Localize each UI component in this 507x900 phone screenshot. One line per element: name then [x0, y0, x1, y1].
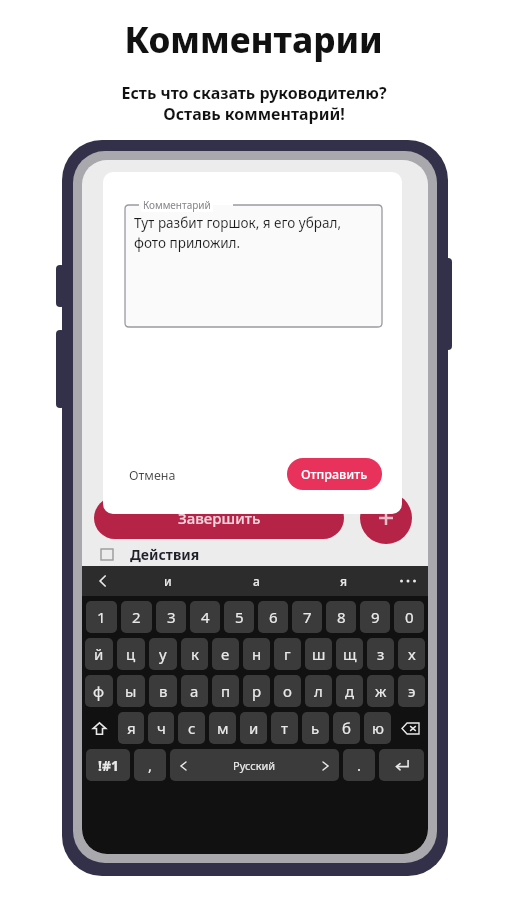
- staticText: к: [191, 644, 199, 664]
- button[interactable]: в: [149, 675, 177, 707]
- staticText: о: [283, 681, 292, 701]
- staticText: Есть что сказать руководителю? Оставь ко…: [121, 82, 387, 125]
- button[interactable]: 3: [156, 601, 186, 633]
- button[interactable]: а: [212, 566, 300, 596]
- button[interactable]: !#1: [86, 749, 130, 781]
- button[interactable]: я: [118, 712, 144, 744]
- button[interactable]: о: [274, 675, 301, 707]
- staticText: 4: [201, 607, 210, 627]
- button[interactable]: л: [305, 675, 332, 707]
- staticText: т: [281, 718, 288, 738]
- button[interactable]: Отправить: [287, 458, 382, 490]
- staticText: с: [188, 718, 196, 738]
- button[interactable]: н: [243, 638, 270, 670]
- button[interactable]: 9: [360, 601, 390, 633]
- button[interactable]: ч: [148, 712, 174, 744]
- button[interactable]: ы: [117, 675, 145, 707]
- button[interactable]: .: [343, 749, 375, 781]
- staticText: э: [408, 681, 416, 701]
- button[interactable]: ж: [367, 675, 394, 707]
- button[interactable]: ю: [364, 712, 391, 744]
- button[interactable]: у: [149, 638, 177, 670]
- button[interactable]: 8: [326, 601, 356, 633]
- button[interactable]: р: [243, 675, 270, 707]
- staticText: 1: [97, 607, 106, 627]
- button[interactable]: я: [300, 566, 388, 596]
- button[interactable]: 0: [394, 601, 424, 633]
- button[interactable]: х: [398, 638, 425, 670]
- button[interactable]: г: [274, 638, 301, 670]
- staticText: а: [190, 681, 199, 701]
- staticText: Отмена: [129, 467, 176, 484]
- button[interactable]: 1: [86, 601, 117, 633]
- staticText: Тут разбит горшок, я его убрал, фото при…: [134, 214, 374, 252]
- button[interactable]: Удалить: [395, 712, 425, 744]
- staticText: Действия: [130, 545, 200, 564]
- button[interactable]: ш: [305, 638, 332, 670]
- button[interactable]: ,: [134, 749, 166, 781]
- staticText: и: [164, 573, 172, 589]
- button[interactable]: и: [240, 712, 267, 744]
- button[interactable]: Русский: [170, 749, 339, 781]
- staticText: ,: [148, 755, 153, 775]
- staticText: н: [252, 644, 262, 664]
- staticText: Завершить: [178, 508, 261, 528]
- staticText: Отправить: [301, 466, 368, 483]
- button[interactable]: щ: [336, 638, 363, 670]
- staticText: 5: [235, 607, 244, 627]
- button[interactable]: б: [333, 712, 360, 744]
- staticText: ц: [126, 644, 136, 664]
- button[interactable]: д: [336, 675, 363, 707]
- staticText: п: [221, 681, 231, 701]
- staticText: 0: [405, 607, 414, 627]
- button[interactable]: 6: [258, 601, 288, 633]
- button[interactable]: 2: [121, 601, 152, 633]
- button[interactable]: Действия: [82, 542, 428, 566]
- staticText: е: [221, 644, 230, 664]
- staticText: 9: [371, 607, 380, 627]
- button[interactable]: с: [178, 712, 205, 744]
- button[interactable]: Ввод: [379, 749, 424, 781]
- button[interactable]: Ещё: [388, 566, 428, 596]
- button[interactable]: т: [271, 712, 298, 744]
- button[interactable]: Shift: [85, 712, 114, 744]
- staticText: ь: [311, 718, 320, 738]
- button[interactable]: 5: [224, 601, 254, 633]
- staticText: я: [127, 718, 136, 738]
- staticText: р: [252, 681, 262, 701]
- button[interactable]: и: [124, 566, 212, 596]
- button[interactable]: Назад: [82, 566, 124, 596]
- staticText: 6: [269, 607, 278, 627]
- staticText: ч: [157, 718, 166, 738]
- staticText: Комментарии: [124, 16, 383, 64]
- button[interactable]: 4: [190, 601, 220, 633]
- button[interactable]: й: [85, 638, 113, 670]
- staticText: 3: [167, 607, 176, 627]
- staticText: ф: [93, 681, 105, 701]
- staticText: ж: [375, 681, 387, 701]
- button[interactable]: Завершить: [94, 497, 344, 539]
- button[interactable]: ф: [85, 675, 113, 707]
- staticText: а: [253, 573, 260, 589]
- button[interactable]: Добавить: [360, 492, 412, 544]
- button[interactable]: з: [367, 638, 394, 670]
- button[interactable]: э: [398, 675, 425, 707]
- button[interactable]: Отмена: [129, 460, 176, 490]
- staticText: ы: [125, 681, 137, 701]
- staticText: г: [284, 644, 291, 664]
- button[interactable]: а: [181, 675, 208, 707]
- staticText: й: [94, 644, 104, 664]
- button[interactable]: 7: [292, 601, 322, 633]
- staticText: у: [159, 644, 167, 664]
- staticText: б: [342, 718, 351, 738]
- staticText: я: [340, 573, 348, 589]
- button[interactable]: ц: [117, 638, 145, 670]
- button[interactable]: е: [212, 638, 239, 670]
- button[interactable]: ь: [302, 712, 329, 744]
- staticText: д: [345, 681, 355, 701]
- staticText: и: [249, 718, 259, 738]
- button[interactable]: п: [212, 675, 239, 707]
- button[interactable]: м: [209, 712, 236, 744]
- button[interactable]: к: [181, 638, 208, 670]
- staticText: 2: [132, 607, 141, 627]
